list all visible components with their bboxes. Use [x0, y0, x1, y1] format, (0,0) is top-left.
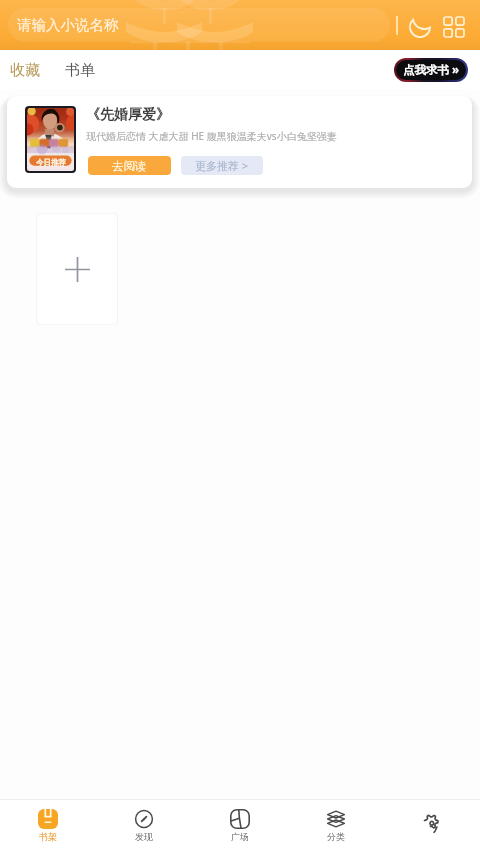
- staticText: 现代婚后恋情 大虐大甜 HE 腹黑狼温柔夫vs小白兔坚强妻: [86, 129, 337, 143]
- staticText: 去阅读: [112, 159, 147, 173]
- button[interactable]: Night mode: [404, 9, 436, 41]
- button[interactable]: 去阅读: [88, 156, 171, 175]
- button[interactable]: 今日推荐: [7, 96, 472, 188]
- staticText: 收藏: [10, 61, 40, 80]
- button[interactable]: 点我求书 »: [394, 58, 468, 82]
- button[interactable]: Add book: [36, 213, 118, 325]
- button[interactable]: 收藏: [0, 50, 50, 90]
- button[interactable]: 分类: [288, 800, 384, 850]
- staticText: 广场: [231, 831, 249, 842]
- staticText: 请输入小说名称: [17, 16, 119, 34]
- staticText: 发现: [135, 831, 153, 842]
- button[interactable]: More: [384, 800, 480, 850]
- button[interactable]: 书单: [55, 50, 105, 90]
- button[interactable]: 发现: [96, 800, 192, 850]
- staticText: 分类: [327, 831, 345, 842]
- staticText: 更多推荐 >: [195, 158, 249, 173]
- button[interactable]: 广场: [192, 800, 288, 850]
- staticText: 书单: [65, 61, 95, 80]
- button[interactable]: 更多推荐 >: [181, 156, 263, 175]
- staticText: 点我求书 »: [403, 62, 460, 78]
- button[interactable]: Categories menu: [438, 9, 470, 41]
- button[interactable]: 书架: [0, 800, 96, 850]
- staticText: 书架: [39, 831, 57, 842]
- button[interactable]: 请输入小说名称: [8, 8, 390, 42]
- staticText: 《先婚厚爱》: [86, 106, 170, 124]
- staticText: 今日推荐: [36, 158, 66, 167]
